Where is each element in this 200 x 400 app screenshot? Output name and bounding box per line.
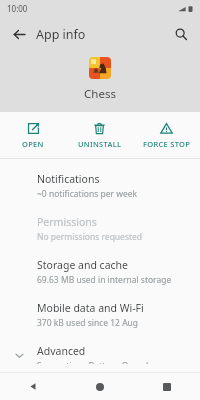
button[interactable]: Search [170, 23, 192, 45]
staticText: 69.63 MB used in internal storage [37, 274, 172, 286]
staticText: 370 kB used since 12 Aug [37, 317, 139, 329]
staticText: Mobile data and Wi-Fi [37, 301, 144, 315]
staticText: FORCE STOP [143, 139, 191, 149]
button[interactable]: Back [8, 23, 30, 45]
button[interactable]: Permissions [0, 208, 200, 251]
staticText: App info [36, 26, 86, 43]
button[interactable]: Notifications [0, 165, 200, 208]
staticText: Notifications [37, 172, 100, 186]
button[interactable]: Home [85, 373, 115, 400]
staticText: Screen time, Battery, Open by default, S… [37, 360, 186, 364]
button[interactable]: OPEN [0, 118, 66, 153]
button[interactable]: Mobile data and Wi-Fi [0, 294, 200, 337]
staticText: Chess [0, 86, 200, 102]
button[interactable]: Storage and cache [0, 251, 200, 294]
button[interactable]: Advanced [0, 337, 200, 372]
button[interactable]: FORCE STOP [133, 118, 200, 153]
button[interactable]: Recent apps [152, 373, 182, 400]
staticText: No permissions requested [37, 231, 143, 243]
staticText: Advanced [37, 344, 86, 358]
button[interactable]: UNINSTALL [66, 118, 133, 153]
staticText: UNINSTALL [78, 139, 122, 149]
staticText: 10:00 [7, 3, 28, 14]
staticText: OPEN [22, 139, 44, 149]
staticText: ~0 notifications per week [37, 188, 138, 200]
button[interactable]: Back [18, 373, 48, 400]
staticText: Storage and cache [37, 258, 128, 272]
staticText: Permissions [37, 215, 97, 229]
